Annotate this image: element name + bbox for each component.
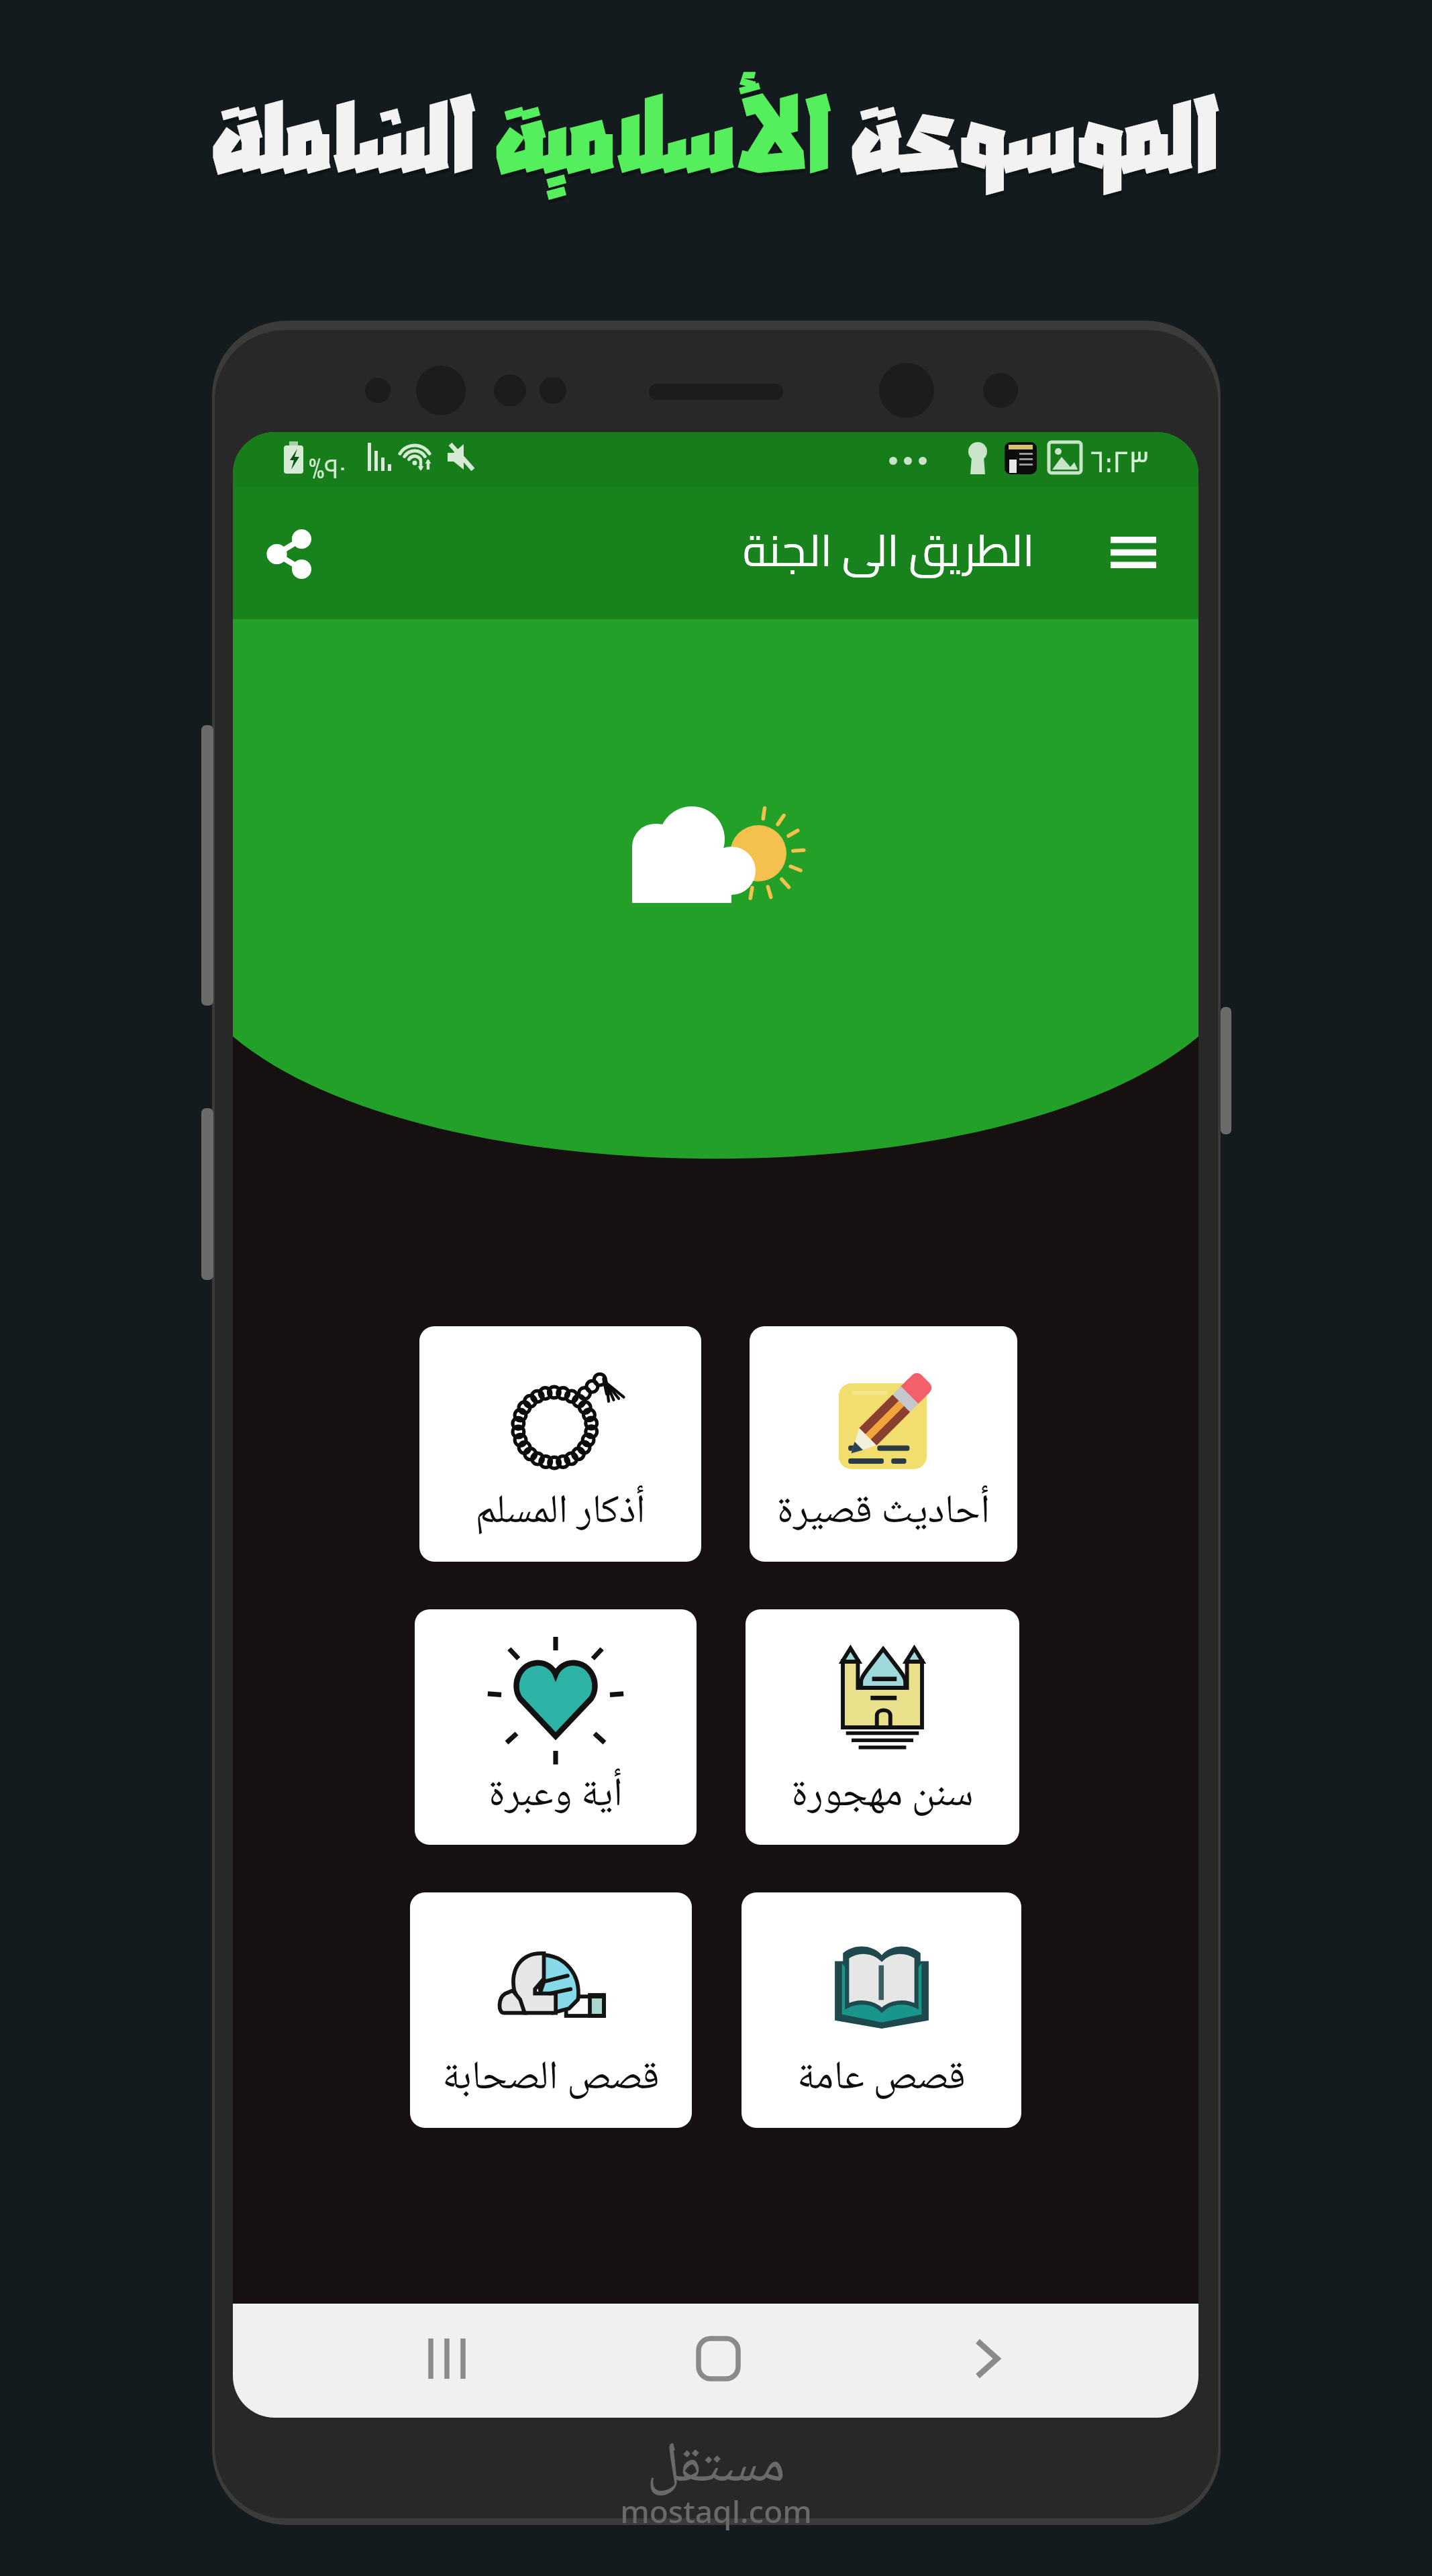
button[interactable]: Back [940,2312,1034,2406]
button[interactable]: Home [671,2312,765,2406]
staticText: الموسوعة الأسلامية الشاملة [0,63,1432,201]
staticText: قصص عامة [741,2045,1021,2114]
staticText: الطريق الى الجنة [743,508,1035,592]
staticText: أذكار المسلم [419,1479,701,1548]
staticText: أية وعبرة [415,1762,697,1831]
staticText: قصص الصحابة [410,2045,692,2114]
button[interactable]: قصص الصحابة [410,1892,692,2128]
button[interactable]: قصص عامة [741,1892,1021,2128]
staticText: %٩٠ [309,441,346,494]
staticText: mostaql.com [0,2490,1432,2532]
button[interactable]: أية وعبرة [415,1609,697,1845]
staticText: أحاديث قصيرة [750,1479,1017,1548]
staticText: سنن مهجورة [746,1762,1019,1831]
button[interactable]: أذكار المسلم [419,1326,701,1562]
button[interactable]: Menu [1090,515,1176,590]
staticText: ٦:٢٣ [1090,432,1149,486]
staticText: الموسوعة الأسلامية الشاملة [0,67,1432,205]
button[interactable]: أحاديث قصيرة [750,1326,1017,1562]
staticText: مستقل [0,2420,1432,2516]
button[interactable]: سنن مهجورة [746,1609,1019,1845]
button[interactable]: Share [249,514,329,594]
button[interactable]: Recent apps [400,2312,494,2406]
